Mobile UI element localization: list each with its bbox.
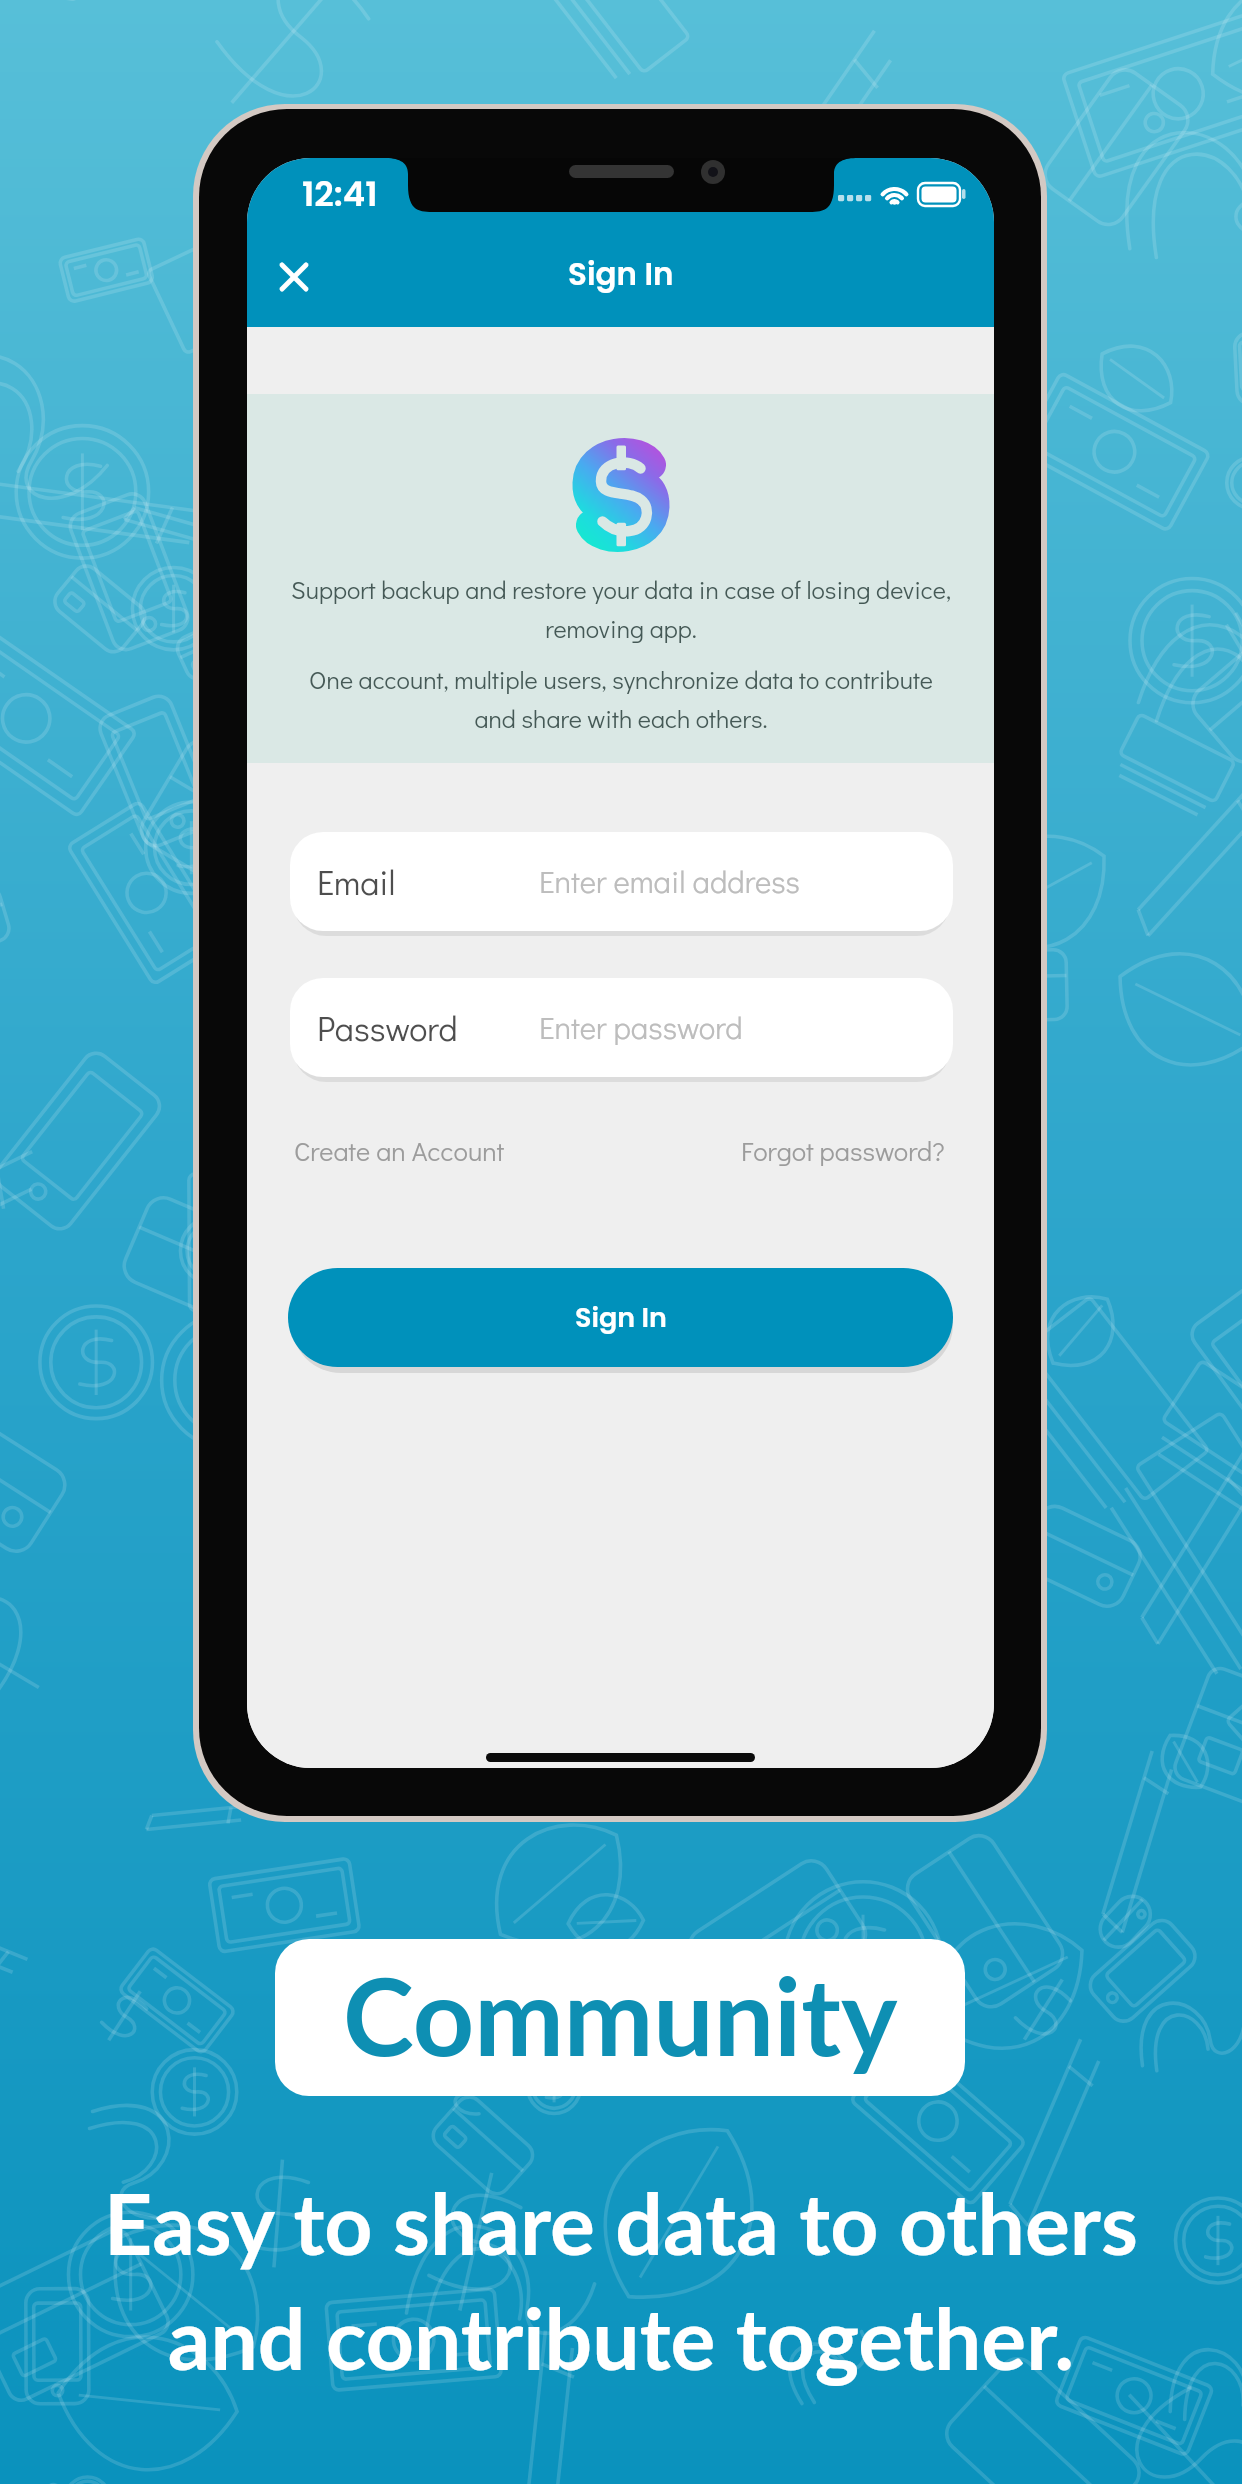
button[interactable]: Close xyxy=(253,236,335,318)
button[interactable]: Create an Account xyxy=(282,1121,512,1177)
staticText: Community xyxy=(343,1950,898,2078)
button[interactable]: Email xyxy=(290,832,953,931)
staticText: Sign In xyxy=(575,1299,667,1337)
staticText: Support backup and restore your data in … xyxy=(271,573,971,645)
staticText: Enter password xyxy=(539,1007,743,1048)
staticText: Password xyxy=(317,1005,458,1050)
button[interactable]: Password xyxy=(290,978,953,1077)
staticText: Create an Account xyxy=(294,1133,505,1168)
staticText: Forgot password? xyxy=(741,1133,945,1168)
button[interactable]: Community xyxy=(275,1939,965,2096)
staticText: Enter email address xyxy=(539,861,800,902)
staticText: Sign In xyxy=(568,252,674,295)
staticText: 12:41 xyxy=(302,170,378,218)
button[interactable]: Forgot password? xyxy=(729,1121,955,1177)
staticText: Easy to share data to others and contrib… xyxy=(0,2172,1242,2387)
button[interactable]: Sign In xyxy=(288,1268,953,1367)
staticText: Email xyxy=(317,859,396,904)
staticText: One account, multiple users, synchronize… xyxy=(271,663,971,735)
